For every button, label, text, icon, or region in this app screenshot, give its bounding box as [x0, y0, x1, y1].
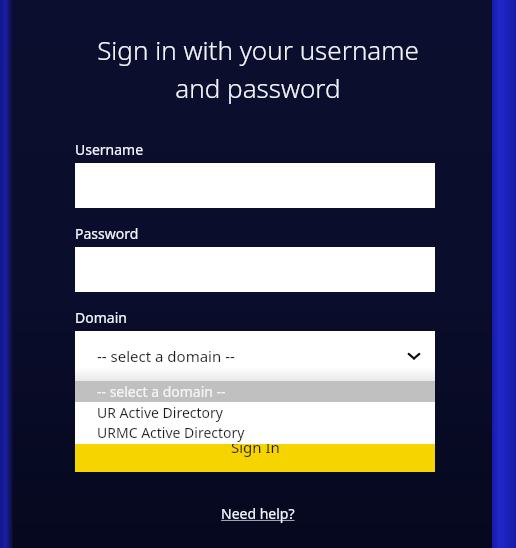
staticText: Password: [75, 224, 139, 243]
button[interactable]: -- select a domain --: [75, 331, 435, 381]
button[interactable]: -- select a domain --: [75, 381, 435, 402]
staticText: Need help?: [221, 504, 295, 523]
other: Open domain list: [407, 349, 421, 363]
button[interactable]: URMC Active Directory: [75, 422, 435, 442]
staticText: Domain: [75, 308, 127, 327]
staticText: -- select a domain --: [97, 382, 226, 401]
staticText: Username: [75, 140, 144, 159]
staticText: Sign In: [231, 437, 280, 457]
button[interactable]: UR Active Directory: [75, 402, 435, 422]
button[interactable]: Sign In: [75, 444, 435, 472]
staticText: URMC Active Directory: [97, 423, 245, 442]
staticText: Sign in with your username and password: [40, 32, 476, 105]
staticText: UR Active Directory: [97, 403, 223, 422]
button[interactable]: Need help?: [215, 502, 301, 525]
staticText: -- select a domain --: [97, 346, 235, 366]
